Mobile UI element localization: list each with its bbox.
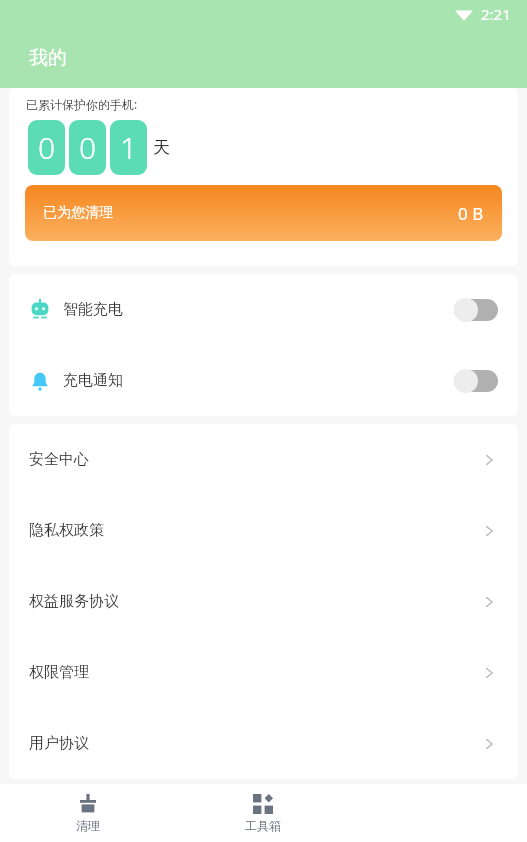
button[interactable]: 隐私权政策 (9, 495, 518, 566)
staticText: 0 (38, 127, 56, 168)
staticText: 我的 (29, 46, 67, 70)
button[interactable]: 安全中心 (9, 424, 518, 495)
button[interactable]: 清理 (0, 794, 175, 833)
staticText: 0 B (458, 202, 484, 225)
staticText: 2:21 (481, 4, 511, 24)
other: Open (482, 666, 496, 680)
staticText: 天 (153, 137, 170, 158)
staticText: 权限管理 (29, 663, 89, 682)
button[interactable]: 工具箱 (175, 794, 351, 833)
button[interactable]: 权益服务协议 (9, 566, 518, 637)
other: Open (482, 737, 496, 751)
staticText: 已为您清理 (43, 204, 113, 222)
staticText: 清理 (76, 818, 100, 833)
other: Open (482, 453, 496, 467)
button[interactable]: 权限管理 (9, 637, 518, 708)
button[interactable]: 用户协议 (9, 708, 518, 779)
staticText: 工具箱 (245, 818, 281, 833)
other: WiFi (455, 7, 473, 21)
staticText: 权益服务协议 (29, 592, 119, 611)
staticText: 智能充电 (63, 300, 123, 319)
other: Open (482, 595, 496, 609)
staticText: 充电通知 (63, 371, 123, 390)
staticText: 1 (120, 127, 138, 168)
staticText: 安全中心 (29, 450, 89, 469)
other: Open (482, 524, 496, 538)
staticText: 隐私权政策 (29, 521, 104, 540)
staticText: 用户协议 (29, 734, 89, 753)
staticText: 已累计保护你的手机: (26, 96, 138, 112)
button[interactable]: 智能充电 (9, 274, 518, 345)
button[interactable]: 充电通知 (9, 345, 518, 416)
staticText: 0 (79, 127, 97, 168)
